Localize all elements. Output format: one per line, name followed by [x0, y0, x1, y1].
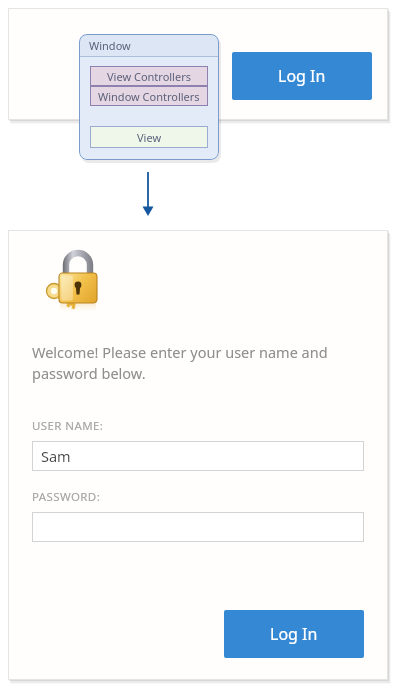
staticText: Log In — [278, 65, 326, 87]
button[interactable]: Window Controllers — [90, 86, 208, 106]
staticText: Window — [89, 38, 131, 53]
button[interactable]: View Controllers — [90, 66, 208, 86]
staticText: USER NAME: — [32, 418, 104, 434]
staticText: Window Controllers — [98, 89, 200, 104]
button[interactable]: Log In — [224, 610, 364, 658]
staticText: Sam — [41, 446, 71, 466]
staticText: PASSWORD: — [32, 489, 101, 505]
staticText: View — [137, 130, 162, 145]
button[interactable]: View — [90, 126, 208, 148]
staticText: View Controllers — [107, 69, 191, 84]
button[interactable]: Sam — [32, 441, 364, 471]
button[interactable]: Log In — [232, 52, 372, 100]
staticText: Welcome! Please enter your user name and… — [32, 342, 328, 384]
staticText: Log In — [270, 623, 318, 645]
button[interactable] — [32, 512, 364, 542]
other: Secure login lock — [40, 250, 104, 312]
